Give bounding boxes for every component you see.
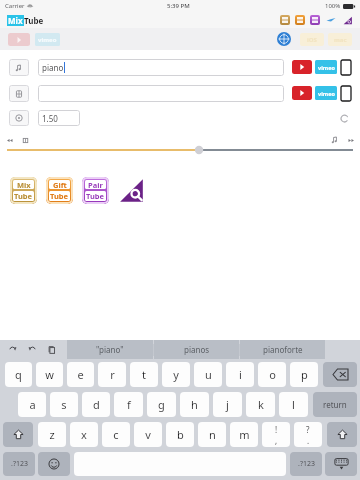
staticText: w xyxy=(45,367,54,382)
button[interactable]: t xyxy=(130,362,158,387)
button[interactable]: h xyxy=(180,392,209,417)
button[interactable]: s xyxy=(50,392,78,417)
button[interactable]: MixTube xyxy=(10,177,37,204)
button[interactable]: v xyxy=(134,422,162,447)
button[interactable]: Previous xyxy=(7,135,17,145)
staticText: y xyxy=(173,367,179,382)
button[interactable]: 1.50 xyxy=(38,110,80,126)
staticText: s xyxy=(61,397,67,412)
button[interactable]: q xyxy=(5,362,32,387)
staticText: i xyxy=(239,367,242,382)
button[interactable]: Device xyxy=(341,86,351,101)
staticText: .?123 xyxy=(298,459,315,469)
button[interactable]: iOS xyxy=(300,33,324,46)
button[interactable]: Search app xyxy=(342,15,353,26)
staticText: Pair xyxy=(88,180,103,189)
button[interactable]: Video xyxy=(9,85,29,102)
button[interactable]: App shortcut xyxy=(310,15,320,25)
button[interactable]: Stop xyxy=(20,135,30,145)
button[interactable]: d xyxy=(82,392,110,417)
button[interactable]: g xyxy=(147,392,176,417)
staticText: x xyxy=(81,427,87,442)
staticText: ! xyxy=(275,424,278,435)
button[interactable]: pianos xyxy=(154,340,239,359)
button[interactable]: GiftTube xyxy=(46,177,73,204)
button[interactable]: l xyxy=(279,392,308,417)
staticText: e xyxy=(77,367,84,382)
button[interactable]: e xyxy=(67,362,94,387)
button[interactable]: b xyxy=(166,422,194,447)
button[interactable]: i xyxy=(226,362,254,387)
button[interactable]: n xyxy=(198,422,226,447)
staticText: t xyxy=(142,367,146,382)
staticText: Tube xyxy=(14,191,33,201)
staticText: a xyxy=(29,397,36,412)
staticText: r xyxy=(110,367,115,382)
button[interactable]: Twitter xyxy=(326,15,336,25)
button[interactable]: Shift xyxy=(327,422,357,447)
staticText: h xyxy=(191,397,198,412)
button[interactable]: Vimeo xyxy=(35,33,60,46)
button[interactable]: y xyxy=(162,362,190,387)
button[interactable]: Undo xyxy=(5,343,19,357)
staticText: g xyxy=(158,397,165,412)
staticText: z xyxy=(49,427,55,442)
button[interactable]: z xyxy=(38,422,66,447)
button[interactable]: x xyxy=(70,422,98,447)
button[interactable]: c xyxy=(102,422,130,447)
button[interactable]: Search Vimeo xyxy=(315,86,337,100)
button[interactable]: mac xyxy=(328,33,352,46)
button[interactable]: ! xyxy=(262,422,290,447)
button[interactable]: Refresh xyxy=(337,111,351,125)
button[interactable]: pianoforte xyxy=(240,340,325,359)
staticText: Mix xyxy=(17,180,31,189)
button[interactable] xyxy=(38,85,284,102)
staticText: Tube xyxy=(50,191,69,201)
staticText: 5:39 PM xyxy=(167,2,190,10)
button[interactable]: j xyxy=(213,392,242,417)
staticText: d xyxy=(93,397,100,412)
button[interactable]: App shortcut xyxy=(280,15,290,25)
staticText: l xyxy=(292,397,295,412)
button[interactable]: .?123 xyxy=(290,452,322,476)
button[interactable]: Search app xyxy=(118,177,145,204)
staticText: ? xyxy=(306,424,310,435)
button[interactable]: Redo xyxy=(25,343,39,357)
button[interactable]: "piano" xyxy=(67,340,153,359)
button[interactable]: Search YouTube xyxy=(292,86,312,100)
button[interactable]: u xyxy=(194,362,222,387)
button[interactable]: m xyxy=(230,422,258,447)
button[interactable]: YouTube xyxy=(8,33,30,46)
button[interactable]: .?123 xyxy=(3,452,35,476)
button[interactable]: Device xyxy=(341,60,351,75)
button[interactable]: Emoji xyxy=(38,452,70,476)
button[interactable]: Search YouTube xyxy=(292,60,312,74)
staticText: j xyxy=(226,397,229,412)
button[interactable]: Audio xyxy=(330,135,340,145)
button[interactable]: a xyxy=(18,392,46,417)
button[interactable]: f xyxy=(114,392,143,417)
button[interactable]: Paste xyxy=(45,343,59,357)
staticText: q xyxy=(15,367,22,382)
staticText: piano xyxy=(42,62,64,73)
button[interactable]: Music xyxy=(9,59,29,76)
button[interactable]: k xyxy=(246,392,275,417)
button[interactable]: Backspace xyxy=(323,362,357,387)
button[interactable]: w xyxy=(36,362,63,387)
button[interactable]: p xyxy=(290,362,318,387)
button[interactable]: return xyxy=(313,392,357,417)
button[interactable]: Hide keyboard xyxy=(325,452,357,476)
button[interactable]: PairTube xyxy=(82,177,109,204)
button[interactable]: o xyxy=(258,362,286,387)
button[interactable]: App shortcut xyxy=(295,15,305,25)
staticText: k xyxy=(258,397,264,412)
button[interactable]: Next xyxy=(343,135,353,145)
button[interactable]: Search Vimeo xyxy=(315,60,337,74)
button[interactable]: ? xyxy=(294,422,322,447)
button[interactable]: r xyxy=(98,362,126,387)
button[interactable]: piano xyxy=(38,59,284,76)
button[interactable]: Globe xyxy=(277,32,291,46)
button[interactable]: Shift xyxy=(3,422,33,447)
button[interactable]: Timer xyxy=(9,110,29,126)
